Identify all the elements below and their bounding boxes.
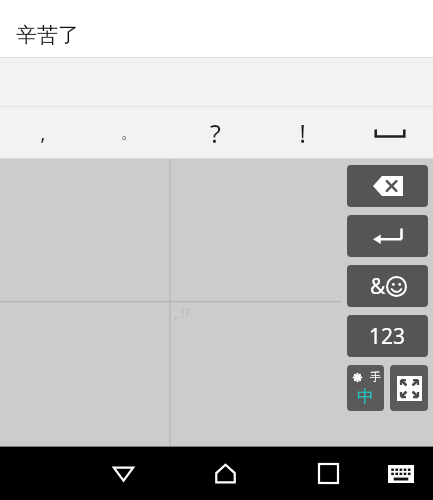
staticText: !	[299, 116, 306, 150]
staticText: ?	[210, 116, 221, 150]
button[interactable]: 手	[347, 365, 384, 411]
button[interactable]: Space	[346, 107, 433, 158]
button[interactable]: ,	[0, 107, 86, 158]
staticText: ,	[40, 119, 46, 146]
staticText: 。	[121, 122, 138, 143]
button[interactable]: Resize keyboard	[390, 365, 428, 411]
button[interactable]: Enter	[347, 215, 428, 257]
button[interactable]: 。	[86, 107, 172, 158]
button[interactable]: Symbols and emoji	[347, 265, 428, 307]
button[interactable]: Numbers	[347, 315, 428, 357]
button[interactable]: !	[259, 107, 346, 158]
button[interactable]: Back	[95, 447, 151, 500]
button[interactable]: ?	[172, 107, 259, 158]
button[interactable]: Home	[197, 447, 253, 500]
button[interactable]: Recents	[300, 447, 356, 500]
staticText: 中	[357, 386, 374, 407]
button[interactable]: Switch keyboard	[377, 450, 425, 498]
staticText: ,.!?	[174, 304, 191, 322]
staticText: &	[370, 272, 386, 301]
staticText: 123	[369, 322, 406, 351]
button[interactable]: Backspace	[347, 165, 428, 207]
staticText: 辛苦了	[16, 22, 79, 48]
staticText: 手	[370, 370, 381, 384]
